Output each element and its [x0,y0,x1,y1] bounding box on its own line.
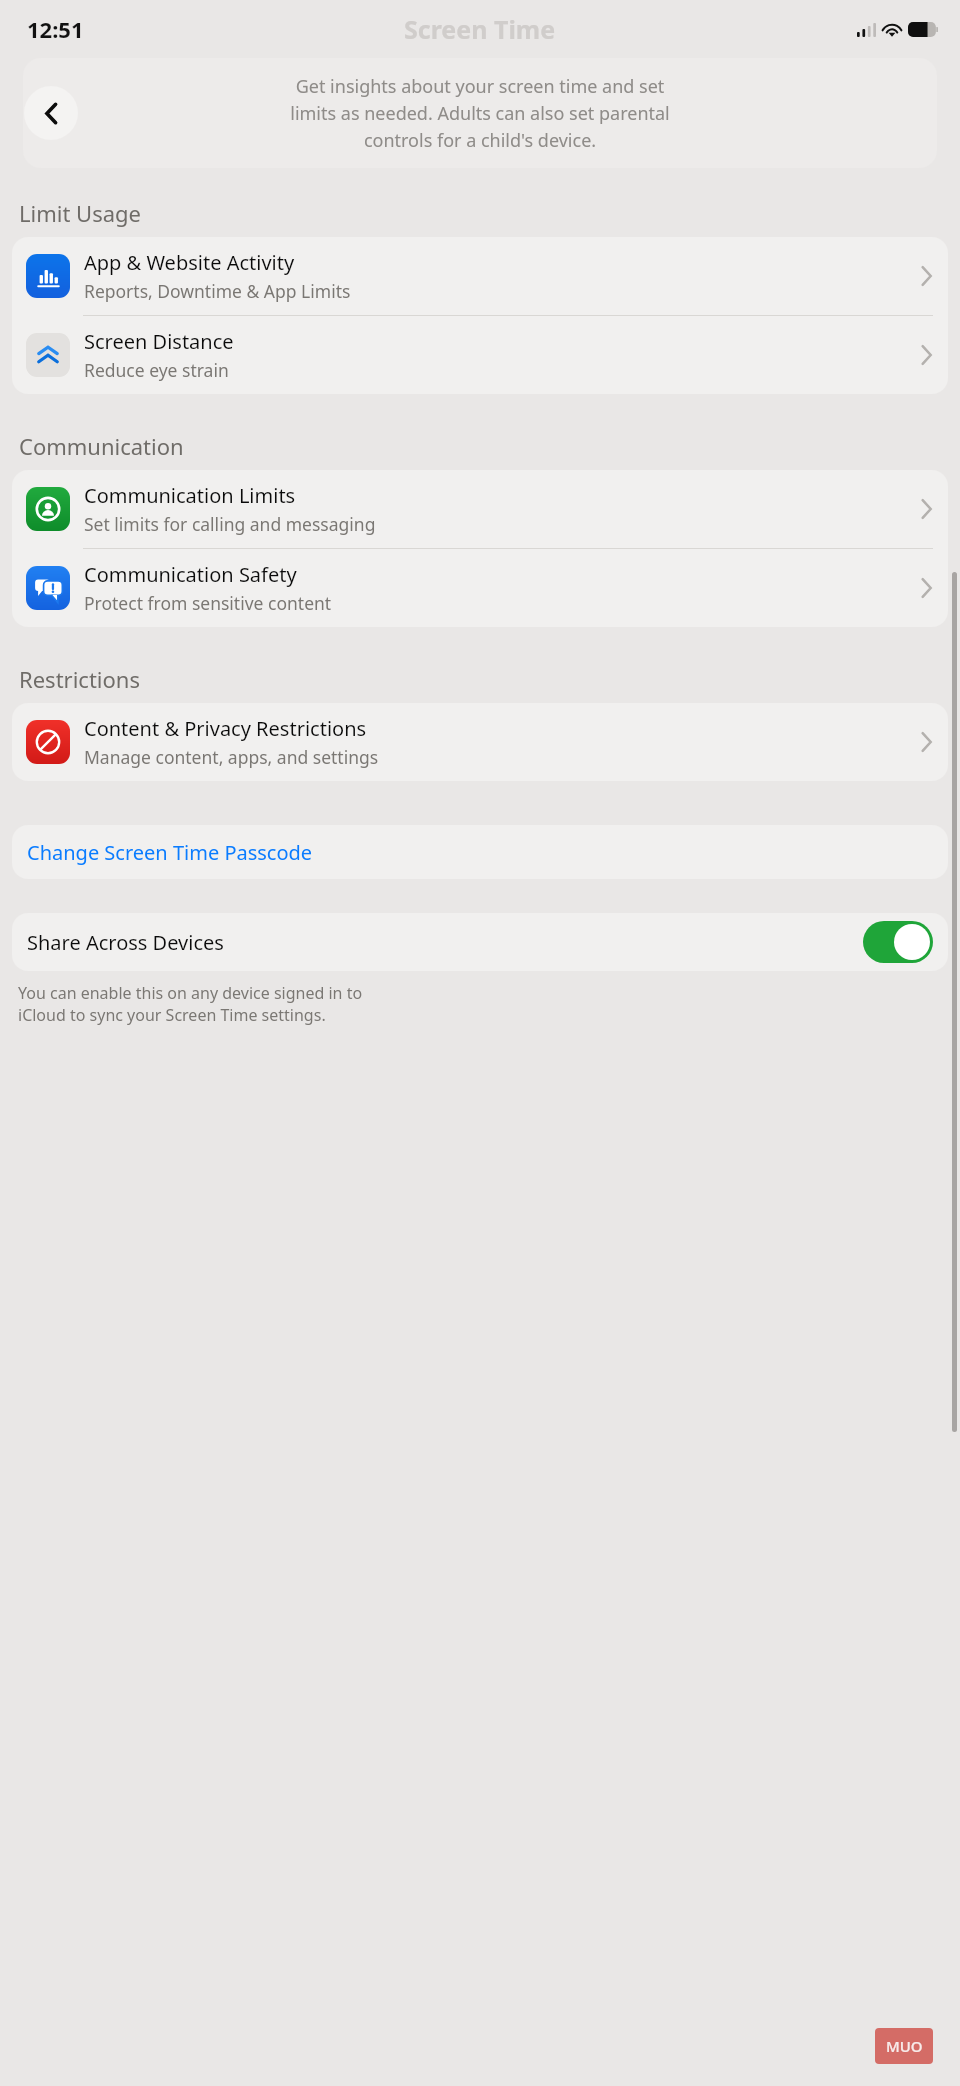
button[interactable]: Share Across Devices [12,913,948,971]
staticText: Restrictions [19,664,140,694]
staticText: Communication [19,431,184,461]
button[interactable]: Change Screen Time Passcode [12,825,948,879]
button[interactable]: Screen Distance [12,316,948,394]
button[interactable]: Back [24,86,78,140]
button[interactable]: Communication Limits [12,470,948,548]
button[interactable]: App & Website Activity [12,237,948,315]
staticText: Share Across Devices [27,929,224,956]
button[interactable]: Communication Safety [12,549,948,627]
staticText: Content & Privacy Restrictions [84,715,367,742]
staticText: Limit Usage [19,198,142,228]
staticText: Screen Distance [84,328,234,355]
staticText: Manage content, apps, and settings [84,745,379,769]
staticText: App & Website Activity [84,249,295,276]
button[interactable]: Content & Privacy Restrictions [12,703,948,781]
staticText: Communication Safety [84,561,297,588]
staticText: Set limits for calling and messaging [84,512,376,536]
staticText: Reduce eye strain [84,358,229,382]
button[interactable]: Share Across Devices [863,921,933,963]
staticText: MUO [886,2036,923,2056]
staticText: You can enable this on any device signed… [18,982,363,1026]
staticText: Screen Time [404,12,556,46]
staticText: 12:51 [27,14,84,44]
staticText: Protect from sensitive content [84,591,332,615]
staticText: Reports, Downtime & App Limits [84,279,351,303]
staticText: Change Screen Time Passcode [27,839,313,866]
staticText: Get insights about your screen time and … [23,74,937,152]
staticText: Communication Limits [84,482,296,509]
